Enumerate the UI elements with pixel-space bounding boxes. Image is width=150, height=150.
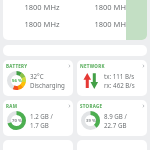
staticText: 39 %	[86, 118, 96, 124]
staticText: 8.9 GB /	[104, 112, 127, 120]
staticText: Discharging	[30, 81, 65, 89]
other: Open BATTERY details	[67, 63, 72, 69]
button[interactable]: RAM	[3, 100, 73, 136]
staticText: STORAGE	[80, 103, 103, 109]
button[interactable]: BATTERY	[3, 60, 73, 96]
staticText: BATTERY	[6, 63, 28, 69]
staticText: 56 %	[12, 78, 22, 84]
button[interactable]: 1800 MHz	[3, 0, 147, 40]
staticText: 32°C	[30, 72, 44, 80]
staticText: 70 %	[12, 118, 22, 124]
other: Network upload and download	[81, 71, 100, 90]
other: Open RAM details	[67, 103, 72, 109]
staticText: 1.2 GB /	[30, 112, 53, 120]
staticText: 1800 MHz	[7, 19, 77, 29]
staticText: 22.7 GB	[104, 121, 127, 129]
staticText: rx: 462 B/s	[104, 81, 135, 89]
staticText: RAM	[6, 103, 18, 109]
staticText: 1800 MHz	[77, 19, 147, 29]
staticText: 1800 MHz	[7, 2, 77, 12]
button[interactable]: STORAGE	[77, 100, 147, 136]
button[interactable]: NETWORK	[77, 60, 147, 96]
staticText: 1800 MHz	[77, 2, 147, 12]
staticText: tx: 111 B/s	[104, 72, 135, 80]
staticText: NETWORK	[80, 63, 105, 69]
other: Open NETWORK details	[141, 63, 146, 69]
staticText: 1.7 GB	[30, 121, 49, 129]
other: Open STORAGE details	[141, 103, 146, 109]
